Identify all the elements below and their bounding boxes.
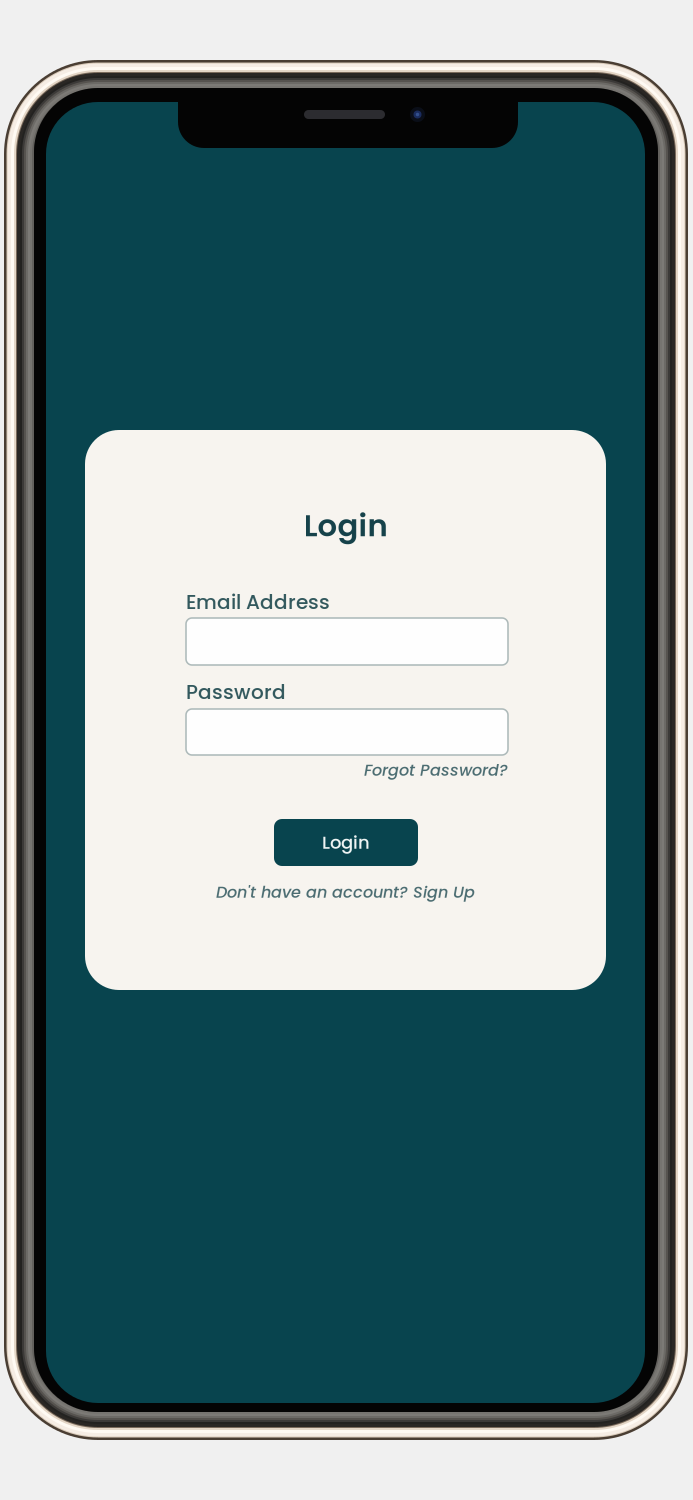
staticText: Login: [322, 830, 370, 855]
button[interactable]: Forgot Password?: [186, 759, 508, 781]
staticText: Email Address: [186, 588, 330, 616]
button[interactable]: Login: [274, 819, 418, 866]
button[interactable]: Don't have an account? Sign Up: [85, 881, 606, 903]
staticText: Forgot Password?: [364, 759, 508, 781]
staticText: Password: [186, 678, 286, 706]
staticText: Login: [303, 504, 387, 547]
staticText: Don't have an account? Sign Up: [216, 881, 475, 903]
